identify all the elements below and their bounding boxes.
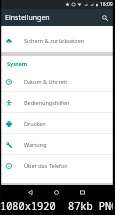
staticText: 16:09 [100,1,113,8]
button[interactable]: Suchen [99,12,110,23]
staticText: Über das Telefon [24,162,68,169]
button[interactable]: Datum & Uhrzeit [0,71,115,92]
staticText: Drucken [24,120,46,127]
staticText: Bedienungshilfen [24,99,70,106]
button[interactable]: Bedienungshilfen [0,92,115,113]
button[interactable]: Wartung [0,134,115,155]
button[interactable]: Übersicht [71,185,94,199]
staticText: Datum & Uhrzeit [24,78,68,85]
staticText: Sichern & zurücksetzen [24,37,85,44]
staticText: Einstellungen [5,13,50,23]
staticText: System [7,60,28,68]
button[interactable]: Drucken [0,113,115,134]
button[interactable]: Sichern & zurücksetzen [0,30,115,51]
staticText: 1080x1920 87kb PNG [0,199,115,213]
button[interactable]: Startbildschirm [45,185,68,199]
button[interactable]: Über das Telefon [0,155,115,176]
button[interactable]: Zurück [19,185,42,199]
staticText: Wartung [24,141,47,148]
